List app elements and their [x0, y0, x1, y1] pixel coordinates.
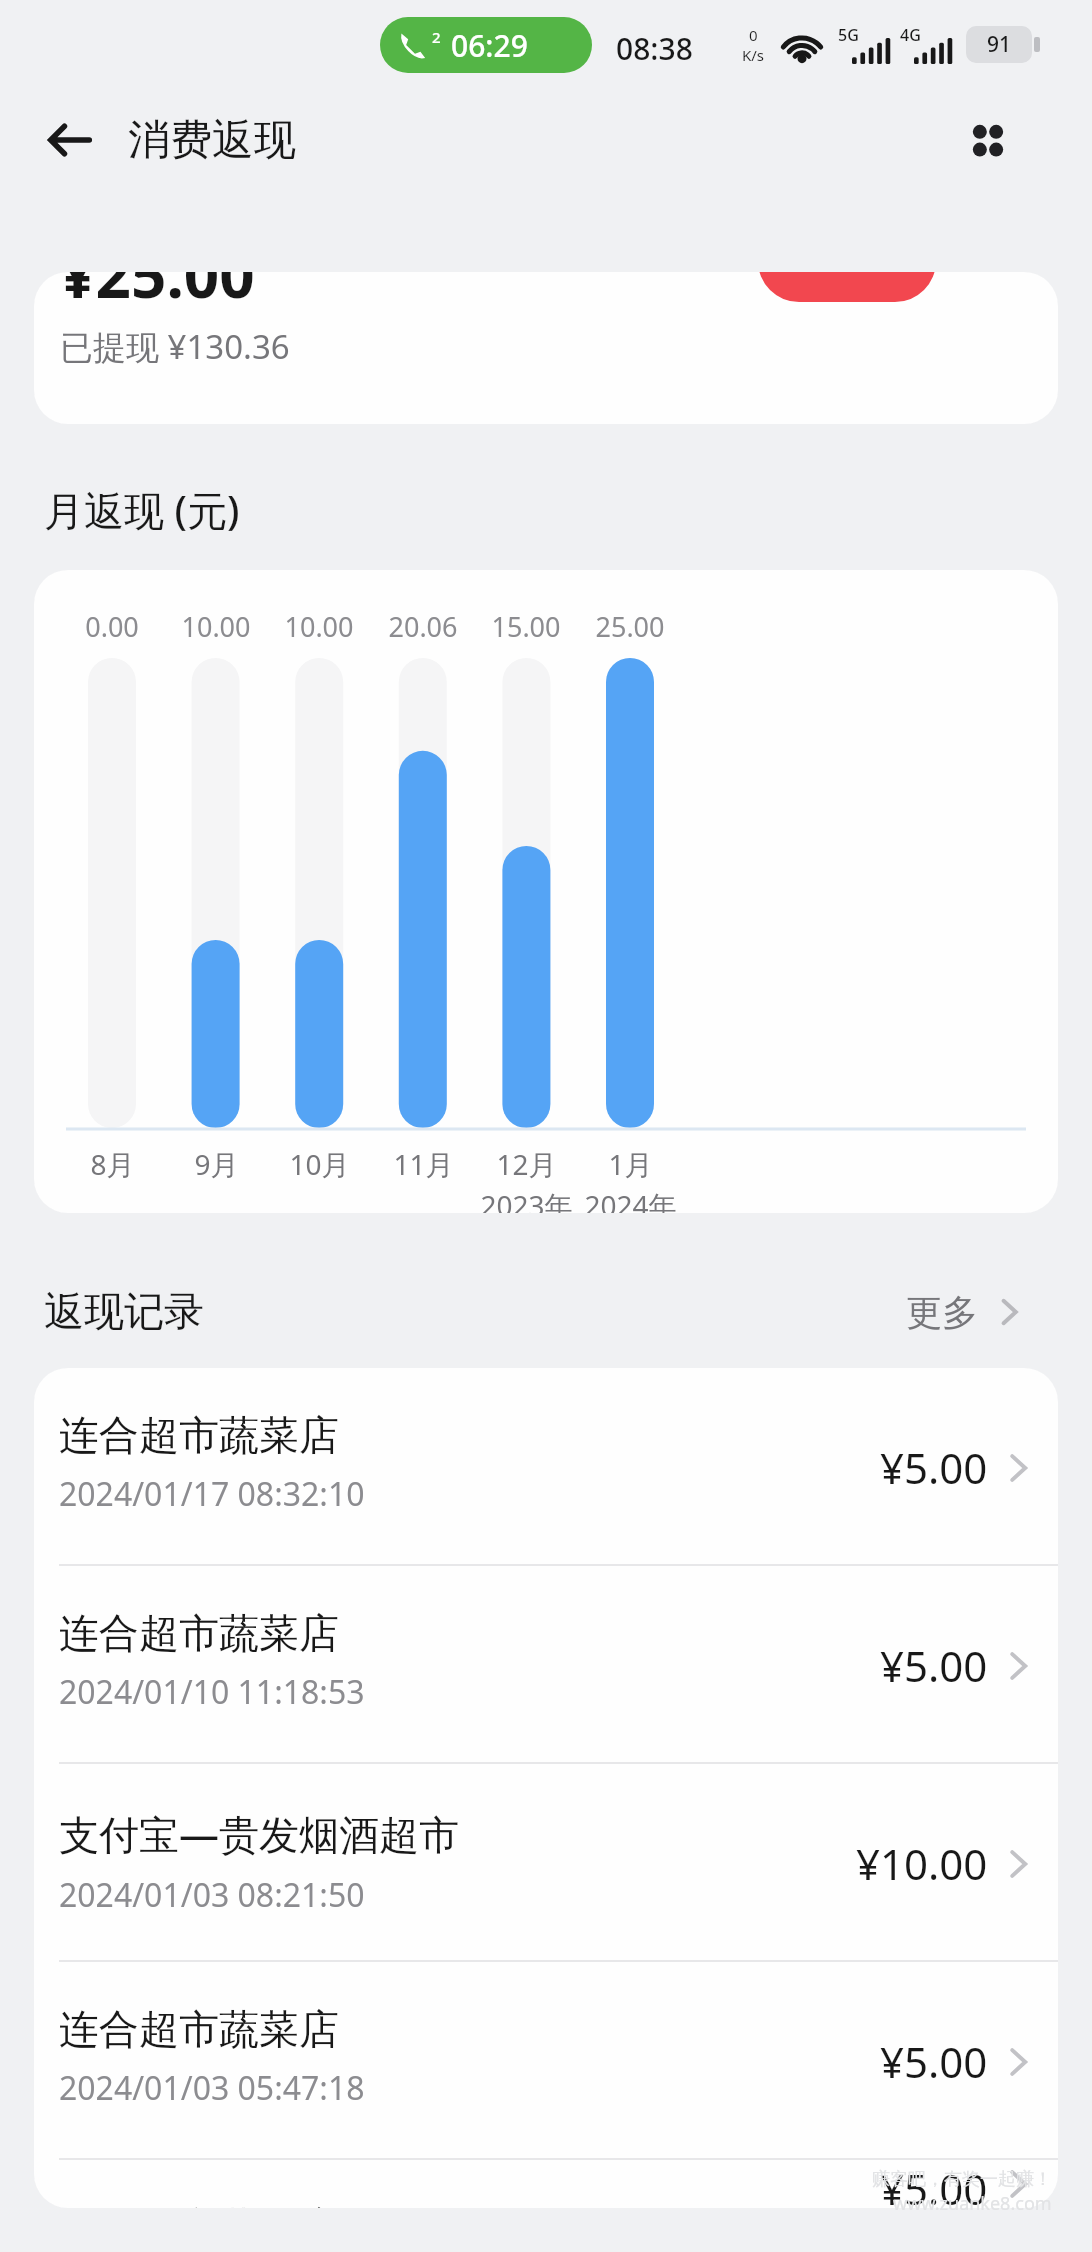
- staticText: www.zuanke8.com: [893, 2191, 1052, 2216]
- staticText: ¥5.00: [880, 2160, 988, 2208]
- staticText: 已提现 ¥130.36: [60, 324, 290, 369]
- staticText: 0.00: [85, 608, 139, 645]
- button[interactable]: Back: [34, 104, 106, 176]
- staticText: 连合超市蔬菜店: [59, 1608, 339, 1658]
- staticText: 8月: [90, 1145, 135, 1183]
- button[interactable]: 支付宝—贵发烟酒超市: [34, 1764, 1058, 1962]
- staticText: 25.00: [595, 608, 665, 645]
- staticText: 4G: [900, 24, 921, 46]
- button[interactable]: 连合超市蔬菜店: [34, 2160, 1058, 2208]
- staticText: 08:38: [616, 28, 693, 69]
- staticText: 2024/01/10 11:18:53: [59, 1670, 365, 1714]
- staticText: 1月: [608, 1145, 653, 1183]
- staticText: 月返现 (元): [44, 482, 240, 537]
- staticText: 91: [987, 30, 1012, 59]
- staticText: 消费返现: [128, 114, 296, 167]
- staticText: 12月: [496, 1145, 557, 1183]
- staticText: 2024年: [584, 1186, 677, 1213]
- button[interactable]: 连合超市蔬菜店: [34, 1368, 1058, 1566]
- staticText: 2024/01/03 05:47:18: [59, 2066, 365, 2110]
- staticText: K/s: [742, 45, 765, 65]
- staticText: 06:29: [451, 25, 528, 66]
- staticText: 2024/01/17 08:32:10: [59, 1472, 365, 1516]
- staticText: 连合超市蔬菜店: [59, 2004, 339, 2054]
- staticText: 返现记录: [44, 1286, 204, 1336]
- staticText: ¥5.00: [880, 1637, 988, 1694]
- button[interactable]: 连合超市蔬菜店: [34, 1962, 1058, 2160]
- staticText: 11月: [393, 1145, 454, 1183]
- staticText: 0: [749, 25, 758, 45]
- staticText: 赚客吧，有奖一起赚！: [872, 2168, 1052, 2191]
- button[interactable]: 更多: [906, 1276, 1026, 1348]
- staticText: 更多: [906, 1290, 978, 1335]
- staticText: 10月: [289, 1145, 350, 1183]
- staticText: 连合超市蔬菜店: [59, 2202, 339, 2208]
- staticText: 10.00: [284, 608, 354, 645]
- staticText: ¥10.00: [856, 1835, 988, 1892]
- staticText: ¥25.00: [60, 272, 255, 316]
- button[interactable]: [758, 272, 936, 302]
- button[interactable]: 连合超市蔬菜店: [34, 1566, 1058, 1764]
- button[interactable]: More options: [940, 100, 1036, 180]
- staticText: 连合超市蔬菜店: [59, 1410, 339, 1460]
- staticText: 2: [432, 27, 441, 47]
- button[interactable]: ¥25.00: [34, 272, 1058, 424]
- staticText: 15.00: [491, 608, 561, 645]
- staticText: 10.00: [181, 608, 251, 645]
- staticText: 支付宝—贵发烟酒超市: [59, 1806, 459, 1861]
- staticText: 2023年: [480, 1186, 573, 1213]
- staticText: 5G: [838, 24, 859, 46]
- staticText: 9月: [194, 1145, 239, 1183]
- staticText: 20.06: [388, 608, 458, 645]
- staticText: ¥5.00: [880, 1439, 988, 1496]
- staticText: ¥5.00: [880, 2033, 988, 2090]
- staticText: 2024/01/03 08:21:50: [59, 1873, 365, 1917]
